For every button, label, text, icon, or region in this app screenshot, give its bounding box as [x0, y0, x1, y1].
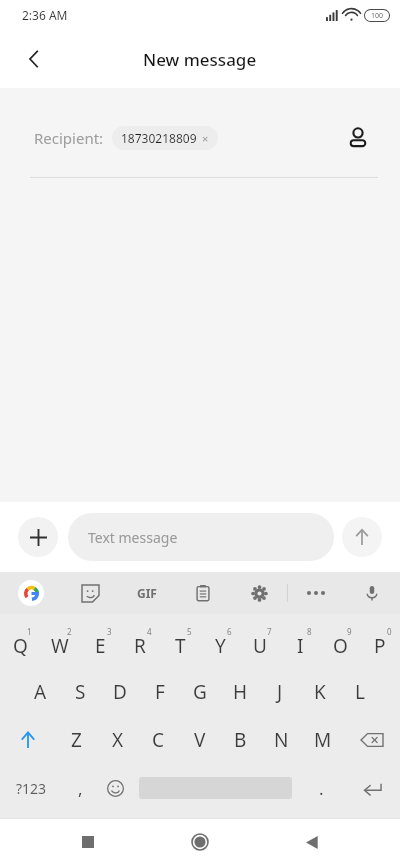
staticText: A — [34, 679, 47, 705]
staticText: H — [233, 679, 248, 705]
staticText: X — [112, 727, 124, 753]
staticText: Text message — [88, 528, 178, 547]
button[interactable]: K — [300, 668, 340, 716]
staticText: 7 — [267, 626, 272, 637]
staticText: 4 — [147, 626, 152, 637]
button[interactable]: Emoji — [98, 764, 133, 812]
staticText: L — [355, 679, 365, 705]
button[interactable]: 9 — [320, 620, 360, 668]
button[interactable]: 8 — [280, 620, 320, 668]
staticText: 1 — [27, 626, 32, 637]
staticText: O — [333, 633, 348, 659]
staticText: 6 — [227, 626, 232, 637]
staticText: 9 — [347, 626, 352, 637]
staticText: New message — [143, 48, 257, 71]
button[interactable]: Clipboard — [175, 572, 231, 614]
staticText: 8 — [307, 626, 312, 637]
button[interactable]: L — [340, 668, 380, 716]
button[interactable]: Backspace — [343, 716, 400, 764]
staticText: Q — [13, 633, 28, 659]
button[interactable]: 7 — [240, 620, 280, 668]
button[interactable]: Z — [56, 716, 97, 764]
button[interactable]: . — [298, 764, 345, 812]
button[interactable]: 6 — [200, 620, 240, 668]
button[interactable]: N — [261, 716, 302, 764]
button[interactable]: A — [20, 668, 60, 716]
staticText: , — [78, 777, 83, 800]
button[interactable]: X — [97, 716, 138, 764]
staticText: K — [314, 679, 326, 705]
button[interactable]: ?123 — [0, 764, 63, 812]
staticText: 0 — [387, 626, 392, 637]
button[interactable]: 2 — [40, 620, 80, 668]
staticText: E — [95, 633, 106, 659]
staticText: 3 — [107, 626, 112, 637]
staticText: W — [51, 633, 69, 659]
button[interactable]: Send — [342, 517, 382, 557]
staticText: Y — [215, 633, 226, 659]
button[interactable]: M — [302, 716, 343, 764]
staticText: B — [234, 727, 247, 753]
staticText: J — [277, 679, 283, 705]
staticText: V — [194, 727, 206, 753]
button[interactable]: J — [260, 668, 300, 716]
button[interactable]: Google — [0, 572, 62, 614]
staticText: 5 — [187, 626, 192, 637]
button[interactable]: V — [179, 716, 220, 764]
staticText: GIF — [137, 585, 157, 601]
button[interactable]: Back — [288, 818, 336, 866]
button[interactable]: 5 — [160, 620, 200, 668]
staticText: I — [297, 633, 304, 659]
staticText: P — [374, 633, 386, 659]
staticText: 100 — [371, 11, 384, 21]
staticText: D — [113, 679, 127, 705]
button[interactable]: F — [140, 668, 180, 716]
button[interactable]: More options — [288, 572, 344, 614]
staticText: F — [155, 679, 165, 705]
staticText: 18730218809 — [121, 130, 197, 146]
button[interactable]: Voice input — [344, 572, 400, 614]
staticText: S — [75, 679, 86, 705]
button[interactable]: H — [220, 668, 260, 716]
button[interactable]: 1 — [0, 620, 40, 668]
staticText: T — [175, 633, 186, 659]
staticText: ?123 — [16, 779, 47, 798]
staticText: 2:36 AM — [22, 7, 68, 23]
button[interactable]: GIF — [119, 572, 175, 614]
button[interactable]: 3 — [80, 620, 120, 668]
button[interactable]: 4 — [120, 620, 160, 668]
staticText: U — [253, 633, 267, 659]
button[interactable]: 0 — [360, 620, 400, 668]
button[interactable]: D — [100, 668, 140, 716]
button[interactable]: G — [180, 668, 220, 716]
staticText: 2 — [67, 626, 72, 637]
button[interactable]: Home — [176, 818, 224, 866]
button[interactable]: Settings — [231, 572, 287, 614]
staticText: C — [152, 727, 165, 753]
staticText: × — [202, 131, 209, 146]
button[interactable]: Contacts — [338, 118, 378, 158]
button[interactable]: Recent apps — [64, 818, 112, 866]
button[interactable]: Enter — [345, 764, 400, 812]
staticText: N — [274, 727, 289, 753]
button[interactable]: Text message — [68, 513, 334, 561]
button[interactable]: , — [63, 764, 98, 812]
staticText: M — [314, 727, 332, 753]
button[interactable]: S — [60, 668, 100, 716]
button[interactable]: 18730218809 — [112, 126, 218, 150]
staticText: . — [319, 777, 324, 800]
staticText: Recipient: — [34, 128, 104, 148]
button[interactable]: C — [138, 716, 179, 764]
staticText: R — [134, 633, 146, 659]
staticText: Z — [71, 727, 82, 753]
button[interactable]: Back — [12, 37, 56, 81]
button[interactable]: B — [220, 716, 261, 764]
staticText: G — [193, 679, 207, 705]
button[interactable]: Add attachment — [18, 517, 58, 557]
button[interactable]: Shift — [0, 716, 56, 764]
button[interactable]: Stickers — [62, 572, 119, 614]
